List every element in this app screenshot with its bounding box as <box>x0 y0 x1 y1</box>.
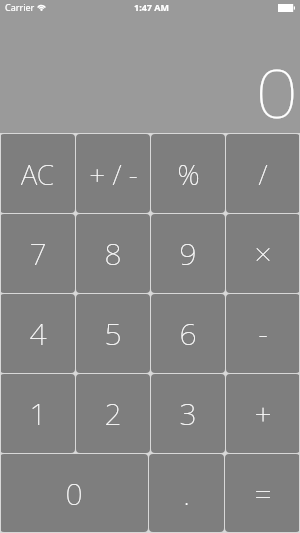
staticText: 4 <box>29 313 47 354</box>
button[interactable]: 6 <box>151 294 225 373</box>
staticText: . <box>183 473 190 514</box>
staticText: AC <box>21 155 54 193</box>
button[interactable]: 2 <box>76 374 150 453</box>
other: Battery <box>278 4 295 12</box>
staticText: 7 <box>29 233 47 274</box>
staticText: - <box>258 313 268 354</box>
button[interactable]: / <box>226 134 300 213</box>
button[interactable]: 9 <box>151 214 225 293</box>
staticText: 1:47 AM <box>134 1 170 13</box>
staticText: 0 <box>255 47 298 133</box>
button[interactable]: - <box>226 294 300 373</box>
staticText: 9 <box>179 233 197 274</box>
button[interactable]: AC <box>0 134 75 213</box>
button[interactable]: 3 <box>151 374 225 453</box>
staticText: × <box>254 233 272 274</box>
button[interactable]: 0 <box>0 454 148 532</box>
button[interactable]: = <box>225 454 300 532</box>
staticText: % <box>177 155 200 193</box>
staticText: 3 <box>179 393 197 434</box>
staticText: + <box>254 393 272 434</box>
button[interactable]: 1 <box>0 374 75 453</box>
button[interactable]: + <box>226 374 300 453</box>
staticText: = <box>254 473 272 514</box>
staticText: 0 <box>65 473 83 514</box>
staticText: Carrier <box>5 1 35 13</box>
button[interactable]: 7 <box>0 214 75 293</box>
button[interactable]: 4 <box>0 294 75 373</box>
staticText: 6 <box>179 313 197 354</box>
staticText: 1 <box>29 393 47 434</box>
button[interactable]: + / - <box>76 134 150 213</box>
staticText: 2 <box>104 393 122 434</box>
staticText: / <box>258 155 268 193</box>
button[interactable]: % <box>151 134 225 213</box>
staticText: 8 <box>104 233 122 274</box>
staticText: 5 <box>104 313 122 354</box>
other: Wi-Fi <box>37 3 46 12</box>
button[interactable]: 8 <box>76 214 150 293</box>
button[interactable]: 5 <box>76 294 150 373</box>
button[interactable]: × <box>226 214 300 293</box>
button[interactable]: . <box>149 454 224 532</box>
staticText: + / - <box>89 155 138 193</box>
